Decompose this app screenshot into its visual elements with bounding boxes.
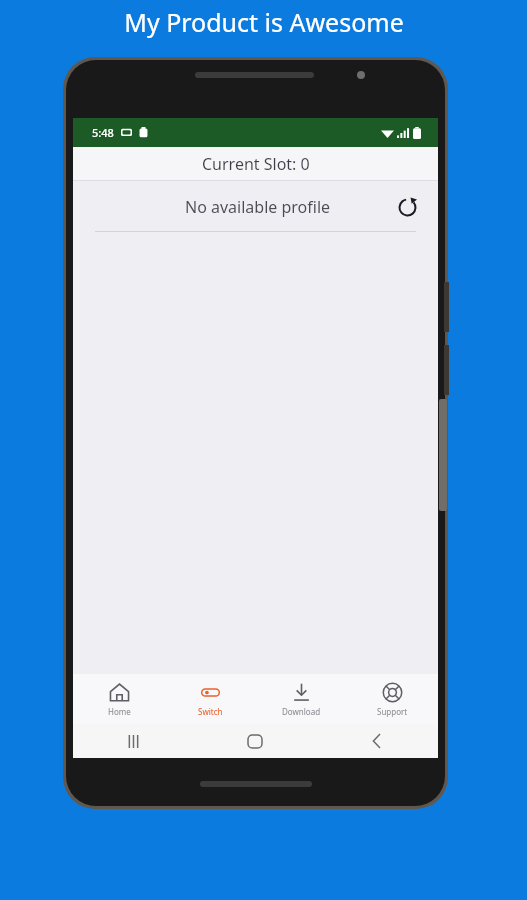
staticText: Support [377, 706, 408, 717]
button[interactable]: Home [194, 724, 316, 758]
button[interactable]: Download [256, 674, 347, 724]
button[interactable]: Home [73, 674, 165, 724]
staticText: Switch [198, 706, 223, 717]
staticText: 5:48 [92, 125, 114, 140]
staticText: Home [108, 706, 131, 717]
staticText: My Product is Awesome [124, 5, 404, 39]
button[interactable]: Refresh [390, 190, 424, 224]
staticText: Current Slot: 0 [202, 153, 310, 175]
button[interactable]: Back [316, 724, 438, 758]
staticText: No available profile [185, 196, 331, 218]
button[interactable]: Switch [165, 674, 256, 724]
button[interactable]: Recents [73, 724, 194, 758]
button[interactable]: Support [347, 674, 438, 724]
staticText: Download [282, 706, 321, 717]
